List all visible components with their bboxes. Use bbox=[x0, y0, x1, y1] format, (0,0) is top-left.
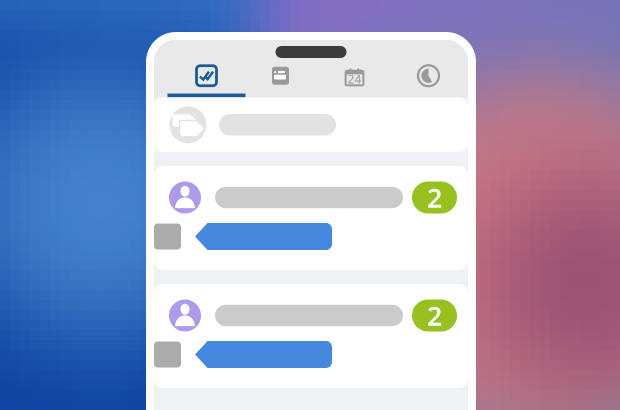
button[interactable]: Task bbox=[154, 166, 468, 270]
button[interactable]: Inbox bbox=[243, 58, 317, 97]
button[interactable]: Search tasks bbox=[154, 97, 468, 152]
button[interactable]: Calendar bbox=[317, 58, 391, 97]
button[interactable]: Activity bbox=[391, 58, 465, 97]
staticText: 24 bbox=[347, 71, 361, 87]
staticText: 2 bbox=[427, 180, 442, 215]
button[interactable]: Tasks bbox=[169, 58, 243, 97]
staticText: 2 bbox=[427, 298, 442, 333]
button[interactable]: Task bbox=[154, 284, 468, 388]
